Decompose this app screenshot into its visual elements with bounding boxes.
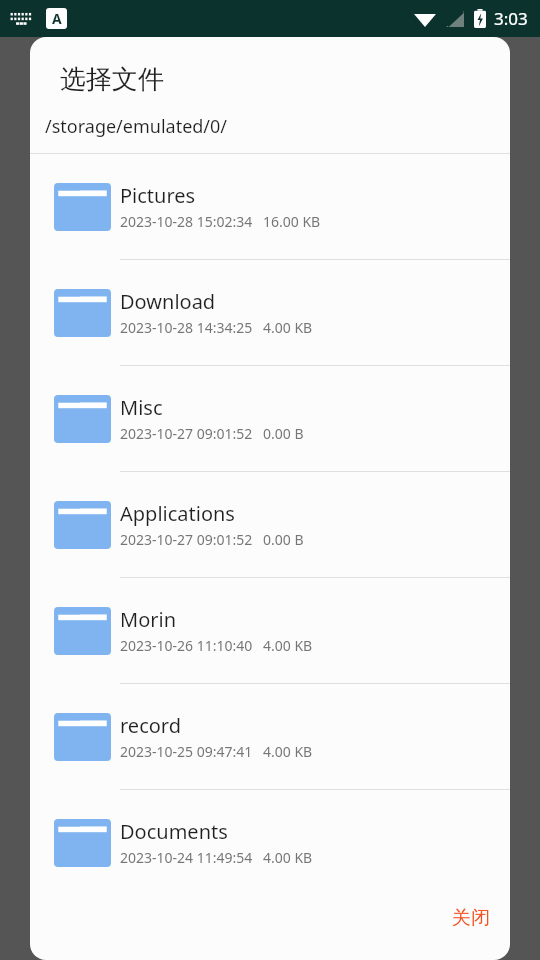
staticText: Misc	[120, 394, 163, 421]
staticText: 4.00 KB	[263, 318, 313, 337]
staticText: 16.00 KB	[263, 212, 321, 231]
staticText: Documents	[120, 818, 228, 845]
other: Wi-Fi	[414, 11, 436, 27]
other: No signal	[446, 11, 464, 27]
staticText: Morin	[120, 606, 177, 633]
button[interactable]: Download	[30, 260, 510, 365]
button[interactable]: Documents	[30, 790, 510, 895]
staticText: 2023-10-27 09:01:52	[120, 530, 253, 549]
staticText: Download	[120, 288, 216, 315]
staticText: 2023-10-28 14:34:25	[120, 318, 253, 337]
staticText: 4.00 KB	[263, 848, 313, 867]
button[interactable]: Misc	[30, 366, 510, 471]
staticText: 2023-10-25 09:47:41	[120, 742, 253, 761]
staticText: 2023-10-24 11:49:54	[120, 848, 253, 867]
staticText: 选择文件	[60, 63, 164, 96]
other: Battery charging	[474, 9, 486, 28]
staticText: 4.00 KB	[263, 742, 313, 761]
staticText: record	[120, 712, 181, 739]
button[interactable]: record	[30, 684, 510, 789]
staticText: 4.00 KB	[263, 636, 313, 655]
staticText: A	[52, 9, 62, 28]
staticText: 2023-10-28 15:02:34	[120, 212, 253, 231]
button[interactable]: Applications	[30, 472, 510, 577]
other: Keyboard	[10, 12, 32, 26]
staticText: 关闭	[452, 906, 490, 930]
staticText: 0.00 B	[263, 530, 304, 549]
staticText: Applications	[120, 500, 235, 527]
staticText: 3:03	[494, 7, 528, 30]
staticText: Pictures	[120, 182, 196, 209]
button[interactable]: Pictures	[30, 154, 510, 259]
staticText: /storage/emulated/0/	[45, 114, 228, 139]
button[interactable]: Morin	[30, 578, 510, 683]
button[interactable]: 关闭	[432, 896, 510, 940]
staticText: 0.00 B	[263, 424, 304, 443]
staticText: 2023-10-27 09:01:52	[120, 424, 253, 443]
staticText: 2023-10-26 11:10:40	[120, 636, 253, 655]
